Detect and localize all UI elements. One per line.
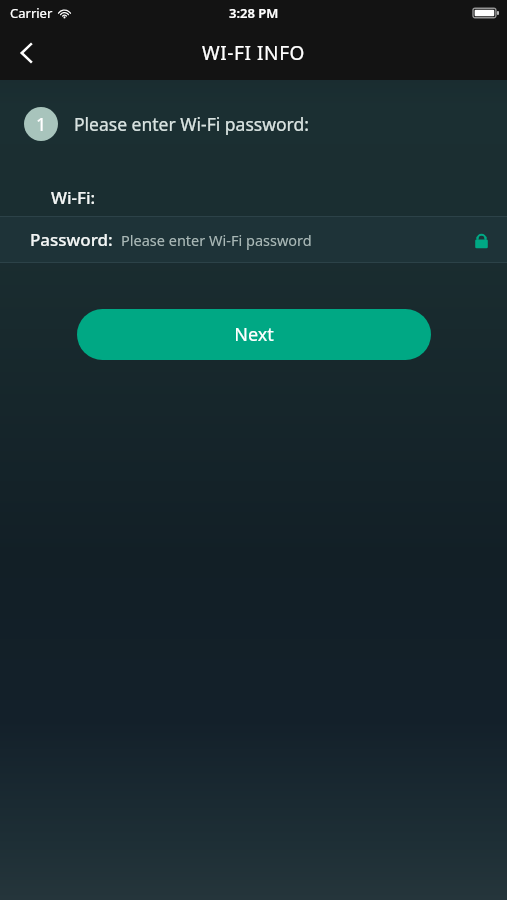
button[interactable]: Back bbox=[0, 26, 54, 80]
staticText: Password: bbox=[30, 228, 113, 251]
button[interactable]: Password: bbox=[0, 217, 507, 262]
staticText: Wi-Fi: bbox=[51, 186, 96, 209]
other: Secured bbox=[469, 228, 493, 252]
staticText: 1 bbox=[36, 112, 47, 137]
staticText: WI-FI INFO bbox=[202, 40, 306, 66]
button[interactable]: Wi-Fi: bbox=[0, 178, 507, 216]
staticText: Next bbox=[234, 322, 274, 347]
staticText: 3:28 PM bbox=[229, 4, 279, 22]
button[interactable]: Next bbox=[77, 309, 431, 360]
staticText: Please enter Wi-Fi password: bbox=[74, 112, 309, 136]
staticText: Carrier bbox=[10, 4, 53, 22]
staticText: Please enter Wi-Fi password bbox=[121, 230, 312, 250]
